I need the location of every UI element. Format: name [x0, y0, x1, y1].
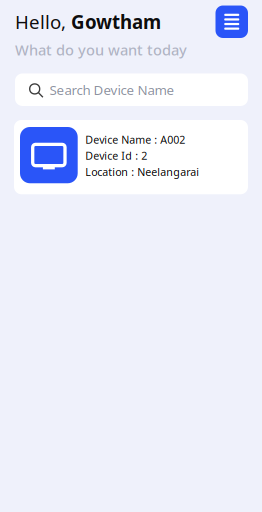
staticText: Search Device Name [49, 81, 174, 99]
staticText: Location : Neelangarai [85, 165, 199, 179]
staticText: Device Id : 2 [85, 149, 147, 163]
button[interactable]: Menu [215, 5, 248, 38]
staticText: What do you want today [15, 40, 187, 59]
button[interactable]: Device Name : A002 [14, 120, 248, 194]
staticText: Hello, Gowtham [15, 9, 161, 34]
staticText: Device Name : A002 [85, 132, 185, 147]
button[interactable]: Search Device Name [15, 73, 248, 106]
